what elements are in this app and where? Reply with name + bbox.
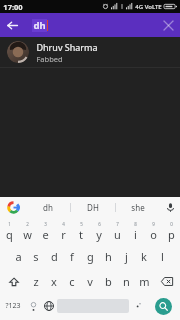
button[interactable]: 3 [36,219,54,244]
staticText: t [79,227,83,242]
staticText: u [114,227,121,242]
button[interactable]: z [27,269,45,294]
staticText: 7 [116,221,119,227]
button[interactable]: Google [0,197,26,218]
button[interactable]: 6 [90,219,108,244]
staticText: b [105,274,112,289]
staticText: 4 [62,221,65,227]
staticText: n [123,274,130,289]
staticText: 6 [98,221,101,227]
staticText: o [150,227,157,242]
staticText: ?123 [5,301,21,311]
button[interactable]: h [99,244,117,269]
staticText: c [69,274,75,289]
button[interactable]: a [9,244,27,269]
staticText: e [42,227,49,242]
button[interactable]: ?123 [0,294,25,318]
staticText: v [87,274,93,289]
staticText: 2 [26,221,29,227]
staticText: h [105,249,112,264]
button[interactable]: k [135,244,153,269]
button[interactable]: b [99,269,117,294]
staticText: 4G VoLTE [135,3,162,11]
staticText: p [168,227,175,242]
staticText: w [23,227,32,242]
button[interactable]: Emoji and comma [25,294,41,318]
button[interactable]: 8 [126,219,144,244]
button[interactable]: g [81,244,99,269]
staticText: Fabbed [36,54,63,64]
staticText: DH [87,202,99,213]
button[interactable]: Change language [41,294,57,318]
staticText: 9 [152,221,155,227]
staticText: q [6,227,13,242]
button[interactable]: 2 [18,219,36,244]
staticText: y [96,227,102,242]
button[interactable]: j [117,244,135,269]
staticText: Dhruv Sharma [36,41,98,53]
button[interactable]: s [27,244,45,269]
button[interactable]: d [45,244,63,269]
button[interactable]: x [45,269,63,294]
staticText: i [134,227,137,242]
staticText: k [141,249,147,264]
staticText: 0 [170,221,173,227]
button[interactable]: v [81,269,99,294]
button[interactable]: 1 [0,219,18,244]
staticText: m [139,274,150,289]
staticText: dh [33,19,46,32]
staticText: s [33,249,39,264]
staticText: d [51,249,58,264]
button[interactable]: dh [26,197,70,218]
staticText: she [131,202,145,213]
button[interactable]: Backspace [153,269,180,294]
button[interactable]: Period [129,294,146,318]
staticText: x [51,274,57,289]
button[interactable]: 5 [72,219,90,244]
button[interactable]: m [135,269,153,294]
button[interactable]: Dhruv Sharma [0,37,180,67]
button[interactable]: Back [0,13,24,37]
staticText: l [161,249,164,264]
button[interactable]: DH [71,197,115,218]
button[interactable]: 7 [108,219,126,244]
staticText: g [87,249,94,264]
button[interactable]: 0 [162,219,180,244]
staticText: j [125,249,128,264]
button[interactable]: 9 [144,219,162,244]
button[interactable]: l [153,244,171,269]
button[interactable]: Voice input [160,197,180,218]
button[interactable]: Shift [0,269,27,294]
button[interactable]: c [63,269,81,294]
staticText: a [15,249,22,264]
staticText: 1 [8,221,11,227]
button[interactable]: she [116,197,160,218]
button[interactable]: 4 [54,219,72,244]
button[interactable]: f [63,244,81,269]
staticText: dh [43,202,53,213]
staticText: 8 [134,221,137,227]
staticText: r [61,227,66,242]
staticText: 3 [44,221,47,227]
button[interactable]: Search [155,298,172,315]
staticText: f [70,249,74,264]
staticText: z [33,274,39,289]
button[interactable]: n [117,269,135,294]
staticText: 5 [80,221,83,227]
button[interactable]: Clear search [156,13,180,37]
staticText: 17:00 [3,2,23,12]
